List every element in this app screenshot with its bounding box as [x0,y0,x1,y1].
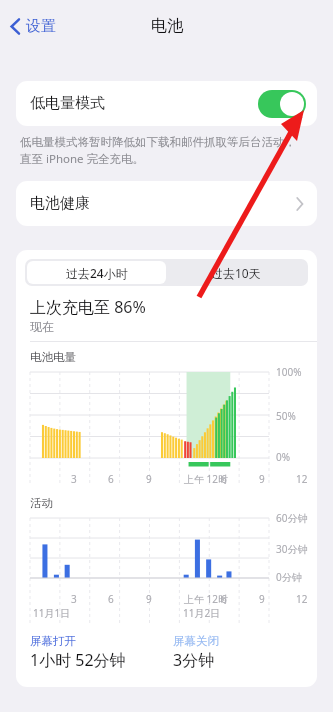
staticText: 6 [108,472,114,486]
staticText: 电池 [151,16,183,36]
staticText: 3 [71,472,77,486]
staticText: 9 [259,472,265,486]
staticText: 11月1日 [33,606,71,620]
staticText: 电池电量 [30,350,76,364]
button[interactable]: 设置 [4,11,62,42]
staticText: 0% [276,450,291,464]
button[interactable]: 电池健康 [16,181,317,226]
staticText: 电池健康 [30,194,90,213]
staticText: 11月2日 [183,606,221,620]
staticText: 0分钟 [276,570,302,584]
staticText: 6 [221,592,227,606]
staticText: 12 [296,592,308,606]
staticText: 1小时 52分钟 [30,649,126,671]
staticText: 设置 [26,17,56,36]
staticText: 12 [296,472,308,486]
button[interactable]: 过去24小时 [27,261,166,284]
staticText: 低电量模式 [30,94,105,113]
staticText: 6 [221,472,227,486]
staticText: 9 [146,592,152,606]
staticText: 3分钟 [173,649,215,671]
staticText: 6 [108,592,114,606]
button[interactable]: 低电量模式 [16,81,317,126]
staticText: 过去10天 [211,265,261,281]
staticText: 屏幕关闭 [173,634,219,648]
staticText: 30分钟 [276,542,308,556]
staticText: 上午 12时 [184,472,229,486]
button[interactable]: Low Power Mode toggle, on [258,90,306,118]
staticText: 60分钟 [276,511,308,525]
staticText: 50% [276,409,296,423]
staticText: 9 [146,472,152,486]
staticText: 3 [71,592,77,606]
staticText: 屏幕打开 [30,634,76,648]
staticText: 活动 [30,496,53,510]
button[interactable]: 过去10天 [166,261,306,284]
staticText: 现在 [30,319,54,334]
staticText: 低电量模式将暂时降低如下载和邮件抓取等后台活动， 直至 iPhone 完全充电。 [20,135,296,166]
staticText: 100% [276,365,302,379]
staticText: 9 [259,592,265,606]
staticText: 上午 12时 [184,592,229,606]
staticText: 上次充电至 86% [30,296,146,318]
staticText: 过去24小时 [66,265,128,281]
